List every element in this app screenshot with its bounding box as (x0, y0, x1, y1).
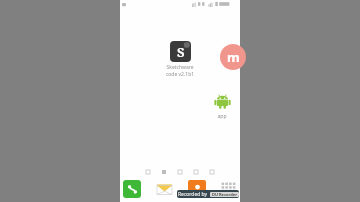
staticText: S (177, 43, 185, 61)
button[interactable]: Apps (219, 180, 237, 198)
staticText: Sketchware (153, 64, 207, 71)
button[interactable]: Contacts (188, 180, 206, 198)
staticText: code v2.1b1 (153, 71, 207, 78)
button[interactable]: Messages (154, 179, 174, 199)
button[interactable]: app (208, 93, 236, 120)
staticText: DU Recorder (212, 192, 237, 197)
button[interactable]: Phone (123, 180, 141, 198)
staticText: app (208, 113, 236, 120)
button[interactable]: S (153, 41, 207, 78)
button[interactable]: Widget (220, 44, 246, 70)
staticText: m (227, 48, 240, 66)
staticText: Recorded by (178, 191, 208, 198)
